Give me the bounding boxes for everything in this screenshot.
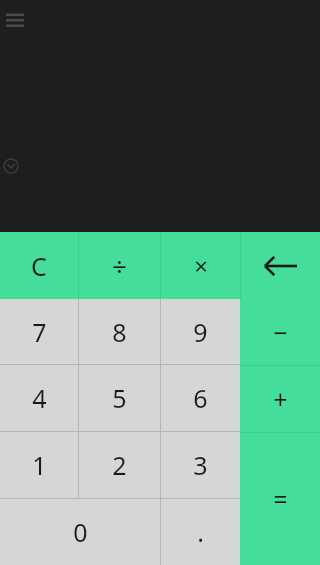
button[interactable]: 6	[161, 365, 240, 431]
button[interactable]: 8	[79, 299, 160, 364]
staticText: −	[273, 315, 288, 349]
staticText: 3	[193, 448, 208, 482]
button[interactable]: .	[161, 499, 240, 565]
staticText: 8	[112, 315, 127, 349]
button[interactable]: Backspace	[241, 232, 320, 299]
button[interactable]: 5	[79, 365, 160, 431]
button[interactable]: 4	[0, 365, 78, 431]
staticText: .	[197, 515, 204, 549]
button[interactable]: ×	[161, 232, 240, 299]
staticText: =	[273, 482, 288, 516]
button[interactable]: +	[240, 366, 320, 432]
button[interactable]: −	[240, 299, 320, 365]
staticText: ×	[194, 249, 208, 282]
button[interactable]: 9	[161, 299, 240, 364]
staticText: 7	[32, 315, 47, 349]
staticText: 5	[112, 381, 127, 415]
button[interactable]: ÷	[79, 232, 160, 299]
button[interactable]: Menu	[2, 6, 30, 34]
staticText: 4	[32, 381, 47, 415]
staticText: +	[273, 382, 288, 416]
staticText: 9	[193, 315, 208, 349]
staticText: C	[31, 249, 47, 283]
button[interactable]: 1	[0, 432, 78, 498]
button[interactable]: 2	[79, 432, 160, 498]
staticText: 6	[193, 381, 208, 415]
staticText: 1	[32, 448, 47, 482]
staticText: 0	[73, 515, 88, 549]
staticText: 2	[112, 448, 127, 482]
staticText: ÷	[112, 248, 127, 283]
button[interactable]: 3	[161, 432, 240, 498]
button[interactable]: C	[0, 232, 78, 299]
button[interactable]: 0	[0, 499, 160, 565]
button[interactable]: =	[240, 433, 320, 565]
button[interactable]: 7	[0, 299, 78, 364]
button[interactable]: Expand history	[1, 156, 21, 176]
